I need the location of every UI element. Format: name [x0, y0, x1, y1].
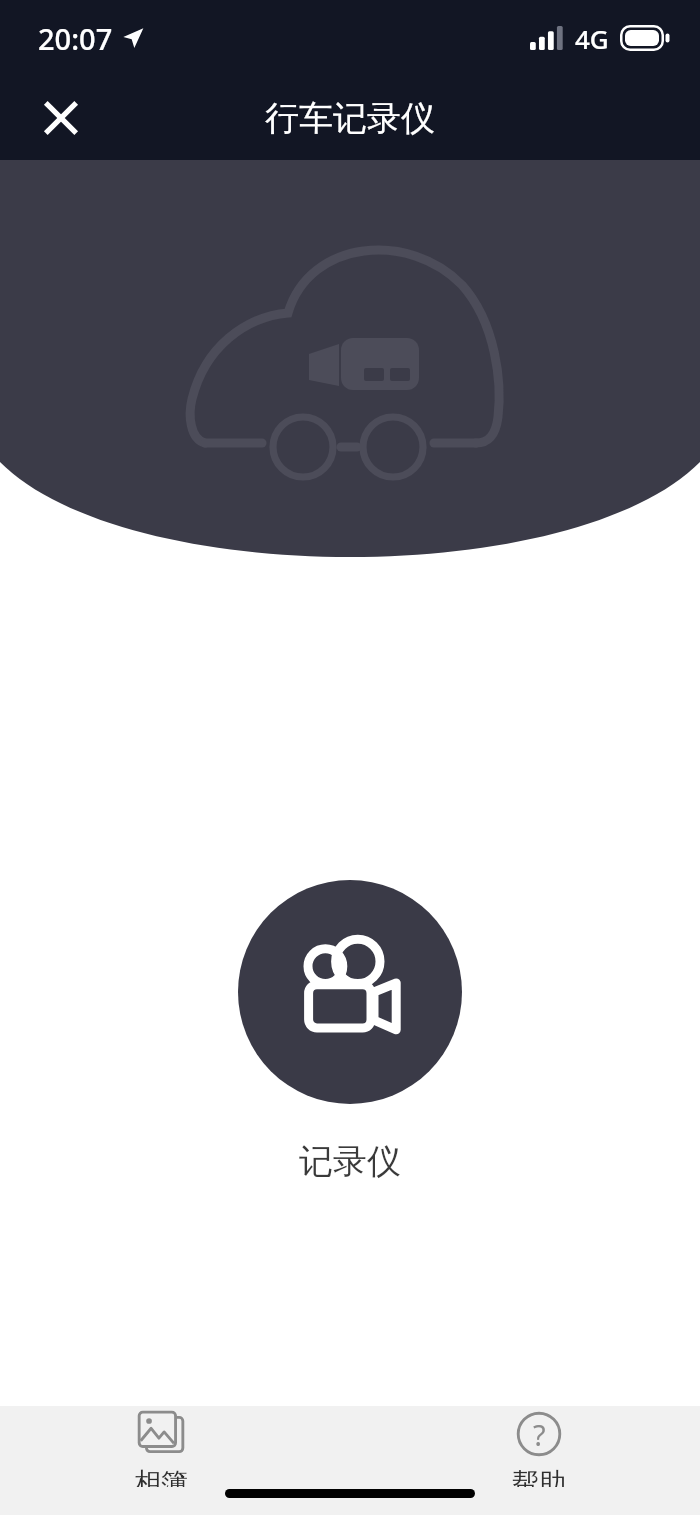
staticText: ? [533, 1415, 546, 1454]
staticText: 帮助 [512, 1466, 566, 1487]
staticText: 行车记录仪 [265, 97, 435, 140]
button[interactable]: Close [22, 79, 100, 157]
staticText: 记录仪 [299, 1140, 401, 1183]
staticText: 4G [575, 21, 609, 56]
button[interactable]: 记录仪 [238, 880, 462, 1104]
button[interactable]: ? [498, 1406, 580, 1489]
staticText: 20:07 [38, 19, 113, 58]
button[interactable]: 相簿 [120, 1406, 202, 1489]
staticText: 相簿 [134, 1466, 188, 1487]
